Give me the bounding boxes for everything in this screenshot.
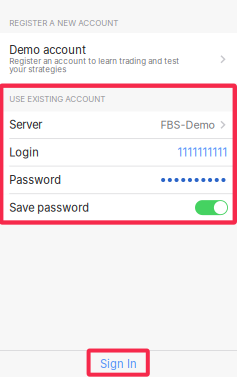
button[interactable]: Demo account bbox=[0, 33, 237, 83]
staticText: FBS-Demo bbox=[161, 118, 215, 131]
button[interactable]: Save password bbox=[0, 194, 237, 221]
staticText: REGISTER A NEW ACCOUNT bbox=[9, 18, 118, 28]
button[interactable]: Sign In bbox=[0, 351, 237, 377]
staticText: Server bbox=[9, 118, 42, 131]
staticText: Demo account bbox=[9, 43, 86, 57]
staticText: 1111111111 bbox=[177, 145, 227, 159]
staticText: Sign In bbox=[100, 357, 137, 371]
button[interactable]: Password bbox=[0, 167, 237, 193]
staticText: Save password bbox=[9, 201, 89, 214]
staticText: USE EXISTING ACCOUNT bbox=[9, 94, 105, 104]
staticText: Register an account to learn trading and… bbox=[9, 56, 179, 66]
staticText: Password bbox=[9, 173, 61, 187]
staticText: your strategies bbox=[9, 65, 66, 74]
button[interactable]: Server bbox=[0, 111, 237, 138]
button[interactable]: Login bbox=[0, 139, 237, 166]
staticText: Login bbox=[9, 146, 39, 159]
